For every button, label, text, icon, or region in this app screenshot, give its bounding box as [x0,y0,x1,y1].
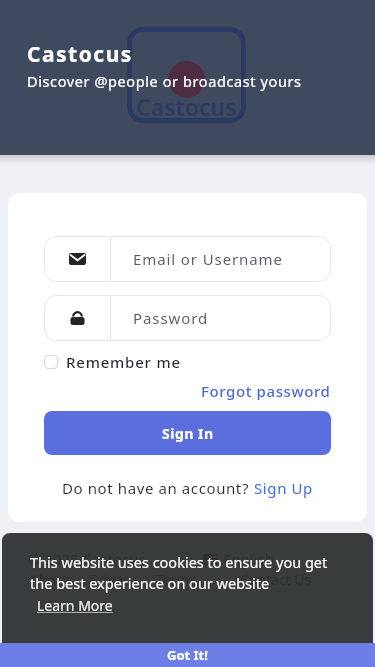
staticText: Remember me [66,352,181,372]
button[interactable]: Got It! [0,643,375,667]
button[interactable]: Remember me [44,352,181,372]
button[interactable]: Sign In [44,411,331,455]
button[interactable]: Learn More [37,596,113,615]
staticText: Sign In [162,424,214,443]
staticText: Discover @people or broadcast yours [27,71,302,91]
staticText: Email or Username [133,249,283,269]
staticText: English [223,549,275,569]
staticText: Password [133,308,209,328]
button[interactable]: Forgot password [201,381,331,401]
staticText: © 2025 Castocus [28,549,146,569]
button[interactable]: Email or Username [44,236,331,282]
staticText: the best experience on our website [30,573,270,593]
staticText: About [30,570,70,589]
staticText: Privacy [90,570,137,589]
staticText: Contact Us [240,570,312,589]
staticText: This website uses cookies to ensure you … [30,552,328,572]
staticText: Got It! [167,646,208,664]
staticText: Castocus [27,40,133,69]
staticText: Terms [156,570,197,589]
staticText: Castocus [136,91,237,122]
button[interactable]: Sign Up [254,478,313,498]
button[interactable]: Password [44,295,331,341]
staticText: Do not have an account? [62,478,254,498]
